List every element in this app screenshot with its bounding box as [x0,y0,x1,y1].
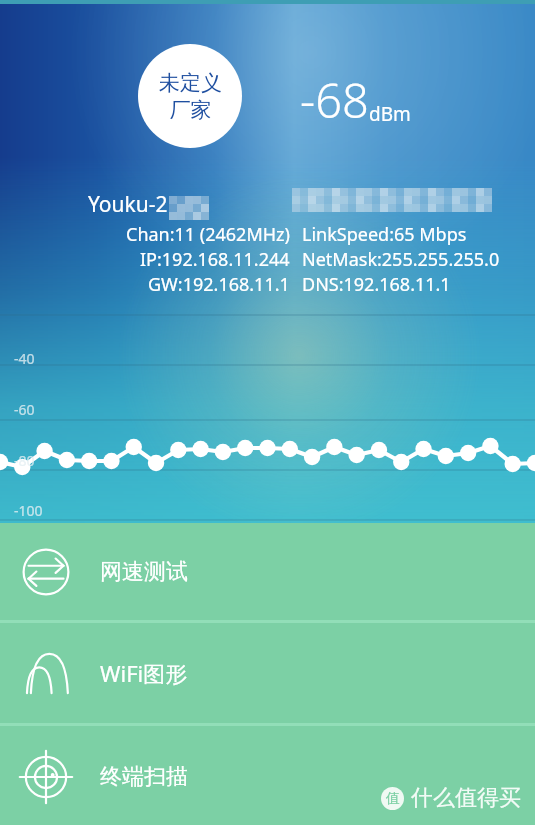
staticText: -68 [300,68,369,132]
other: WiFi图形 [18,645,74,701]
staticText: DNS:192.168.11.1 [302,272,451,297]
staticText: Youku-2 [88,190,168,219]
other: 终端扫描 [18,749,74,805]
button[interactable]: 终端扫描 [0,726,535,825]
staticText: GW:192.168.11.1 [148,272,290,297]
staticText: -60 [14,400,35,419]
staticText: IP:192.168.11.244 [140,247,290,272]
other: 网速测试 [18,544,74,600]
staticText: 网速测试 [100,558,188,586]
staticText: 什么值得买 [411,784,521,812]
staticText: LinkSpeed:65 Mbps [302,222,467,247]
staticText: NetMask:255.255.255.0 [302,247,500,272]
staticText: Chan:11 (2462MHz) [126,222,290,247]
staticText: 未定义 厂家 [159,70,222,123]
button[interactable]: 网速测试 [0,523,535,620]
staticText: 值 [386,790,400,808]
staticText: 终端扫描 [100,763,188,791]
button[interactable]: WiFi图形 [0,623,535,723]
staticText: dBm [369,101,411,127]
staticText: -40 [14,349,35,368]
button[interactable]: 未定义 厂家 [138,44,242,148]
staticText: WiFi图形 [100,658,188,688]
staticText: -100 [14,501,43,520]
staticText: -80 [14,451,35,470]
